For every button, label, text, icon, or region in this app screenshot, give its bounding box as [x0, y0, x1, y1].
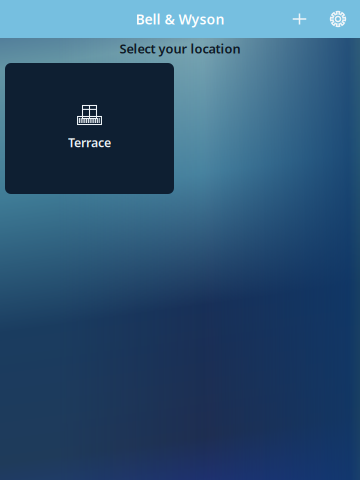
staticText: Bell & Wyson [135, 9, 224, 29]
staticText: Terrace [68, 134, 111, 151]
button[interactable]: Terrace [5, 63, 174, 194]
button[interactable]: Add location [280, 0, 319, 38]
staticText: Select your location [119, 40, 240, 57]
button[interactable]: Settings [319, 0, 357, 38]
